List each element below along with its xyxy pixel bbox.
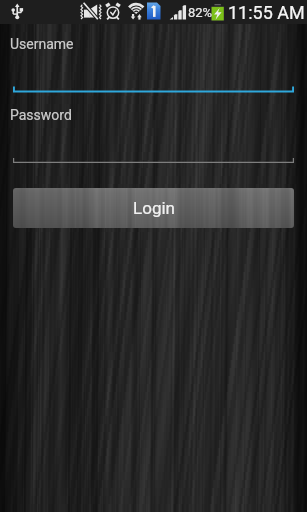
staticText: 82% xyxy=(188,5,213,20)
button[interactable]: Username xyxy=(10,36,294,95)
other: Status bar xyxy=(0,0,307,24)
button[interactable]: Password xyxy=(10,107,294,166)
staticText: Username xyxy=(10,36,74,52)
staticText: 11:55 AM xyxy=(228,2,305,23)
staticText: Password xyxy=(10,107,72,123)
staticText: Login xyxy=(133,198,175,218)
button[interactable]: Login xyxy=(13,188,294,228)
